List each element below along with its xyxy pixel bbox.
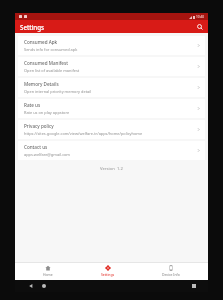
button[interactable]: Home <box>39 263 57 279</box>
staticText: Open internal priority memory detail <box>24 89 92 94</box>
button[interactable]: Consumed Manifest <box>18 57 205 76</box>
button[interactable]: Privacy policy <box>18 120 205 139</box>
staticText: Device Info <box>162 272 180 277</box>
staticText: apps.welfare@gmail.com <box>24 152 70 157</box>
staticText: Version 1.2 <box>100 166 123 172</box>
button[interactable]: Device Info <box>158 263 184 279</box>
staticText: Memory Details <box>24 81 59 87</box>
staticText: Consumed Apk <box>24 39 58 45</box>
staticText: Contact us <box>24 144 48 150</box>
button[interactable]: Consumed Apk <box>18 36 205 55</box>
staticText: Sends info for consumed apk <box>24 47 78 52</box>
button[interactable]: Rate us <box>18 99 205 118</box>
staticText: Privacy policy <box>24 123 54 129</box>
button[interactable]: Contact us <box>18 141 205 160</box>
other: Back <box>29 284 33 288</box>
button[interactable]: Memory Details <box>18 78 205 97</box>
other: Home <box>42 284 46 288</box>
staticText: Rate us <box>24 102 41 108</box>
staticText: 10:40 <box>196 15 205 19</box>
staticText: https://sites.google.com/view/welfare-tr… <box>24 131 143 136</box>
staticText: Open list of available manifest <box>24 68 80 73</box>
button[interactable]: Search <box>194 21 205 32</box>
staticText: Settings <box>20 23 45 31</box>
staticText: Settings <box>101 272 115 277</box>
button[interactable]: Settings <box>97 263 119 279</box>
staticText: Home <box>43 272 53 277</box>
staticText: Rate us on play appstore <box>24 110 70 115</box>
staticText: Consumed Manifest <box>24 60 68 66</box>
